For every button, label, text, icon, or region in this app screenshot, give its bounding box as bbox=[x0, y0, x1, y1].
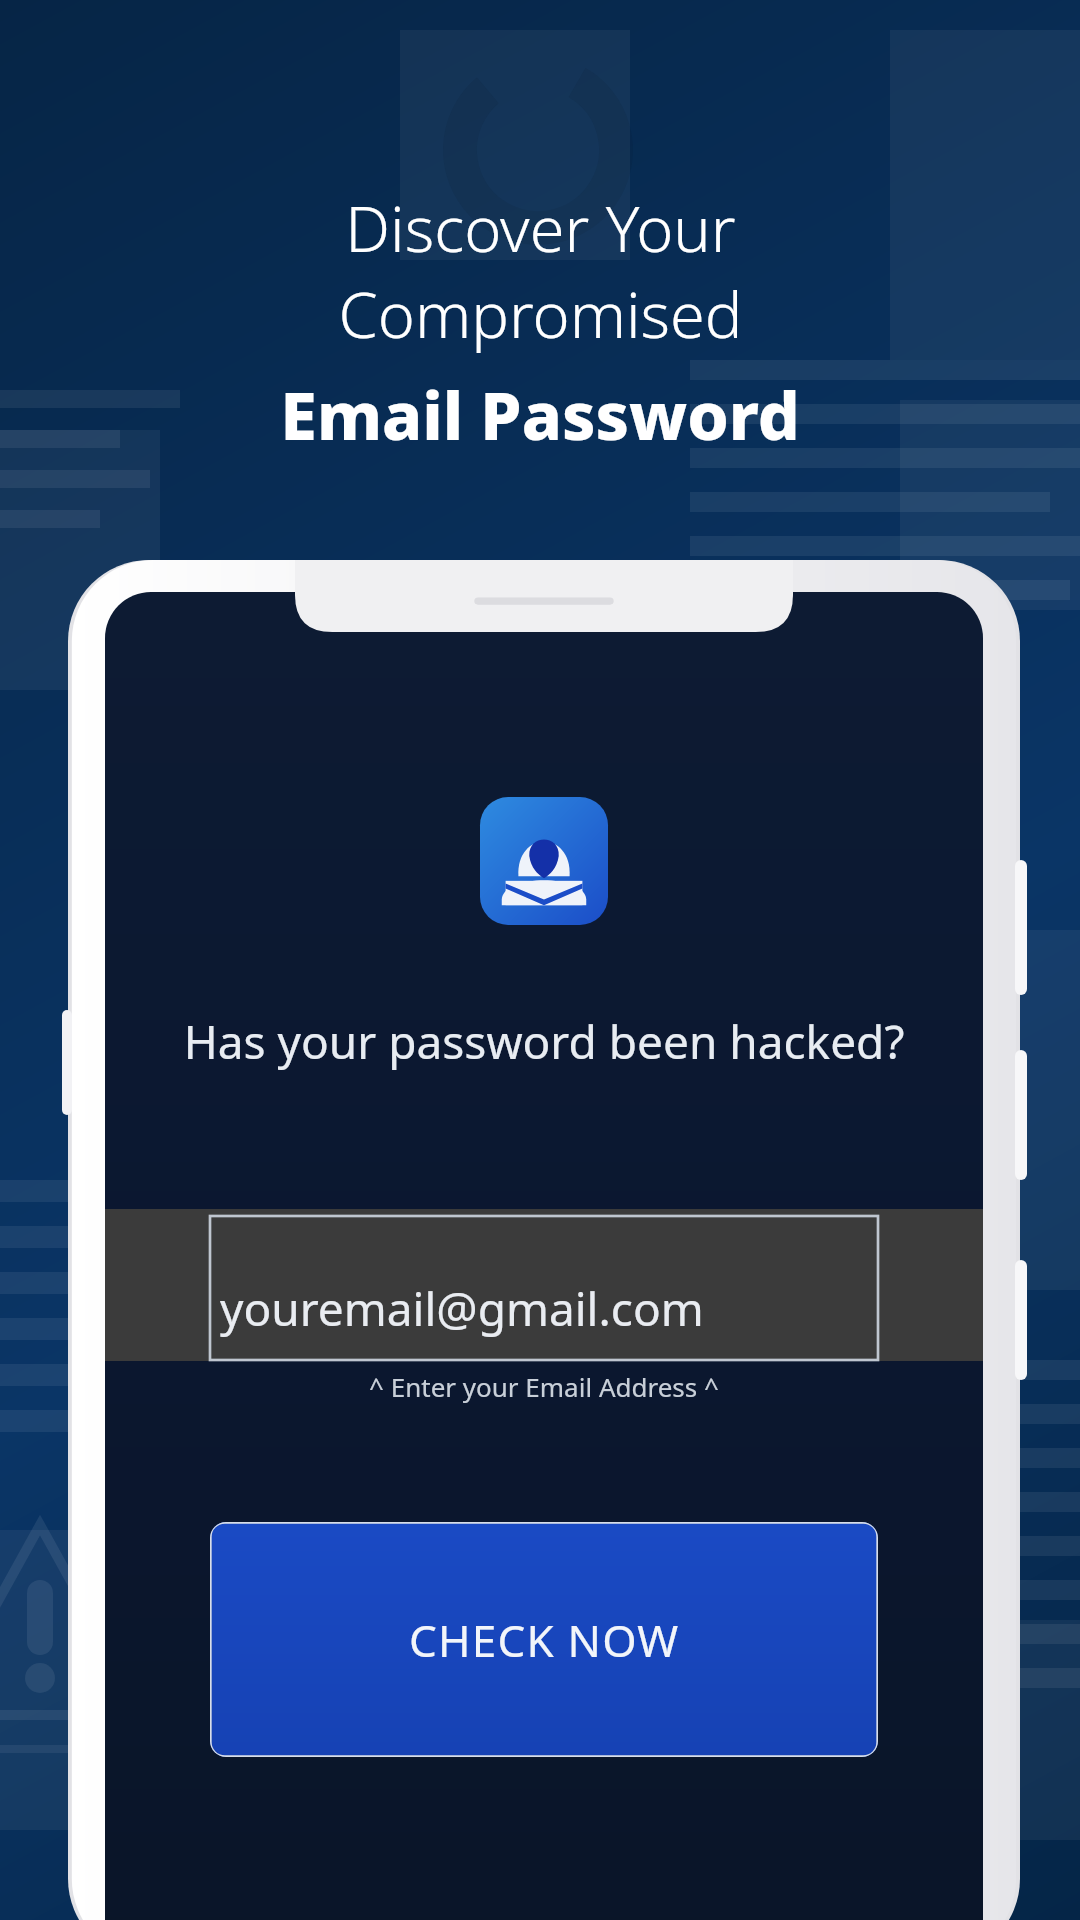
staticText: Compromised bbox=[338, 271, 743, 357]
staticText: Email Password bbox=[280, 369, 800, 459]
staticText: youremail@gmail.com bbox=[220, 1277, 704, 1340]
staticText: Has your password been hacked? bbox=[145, 1010, 943, 1073]
button[interactable]: youremail@gmail.com bbox=[210, 1216, 878, 1360]
staticText: ^ Enter your Email Address ^ bbox=[105, 1369, 983, 1404]
button[interactable]: CHECK NOW bbox=[210, 1522, 878, 1757]
staticText: Discover Your bbox=[345, 185, 736, 271]
staticText: CHECK NOW bbox=[409, 1610, 680, 1670]
